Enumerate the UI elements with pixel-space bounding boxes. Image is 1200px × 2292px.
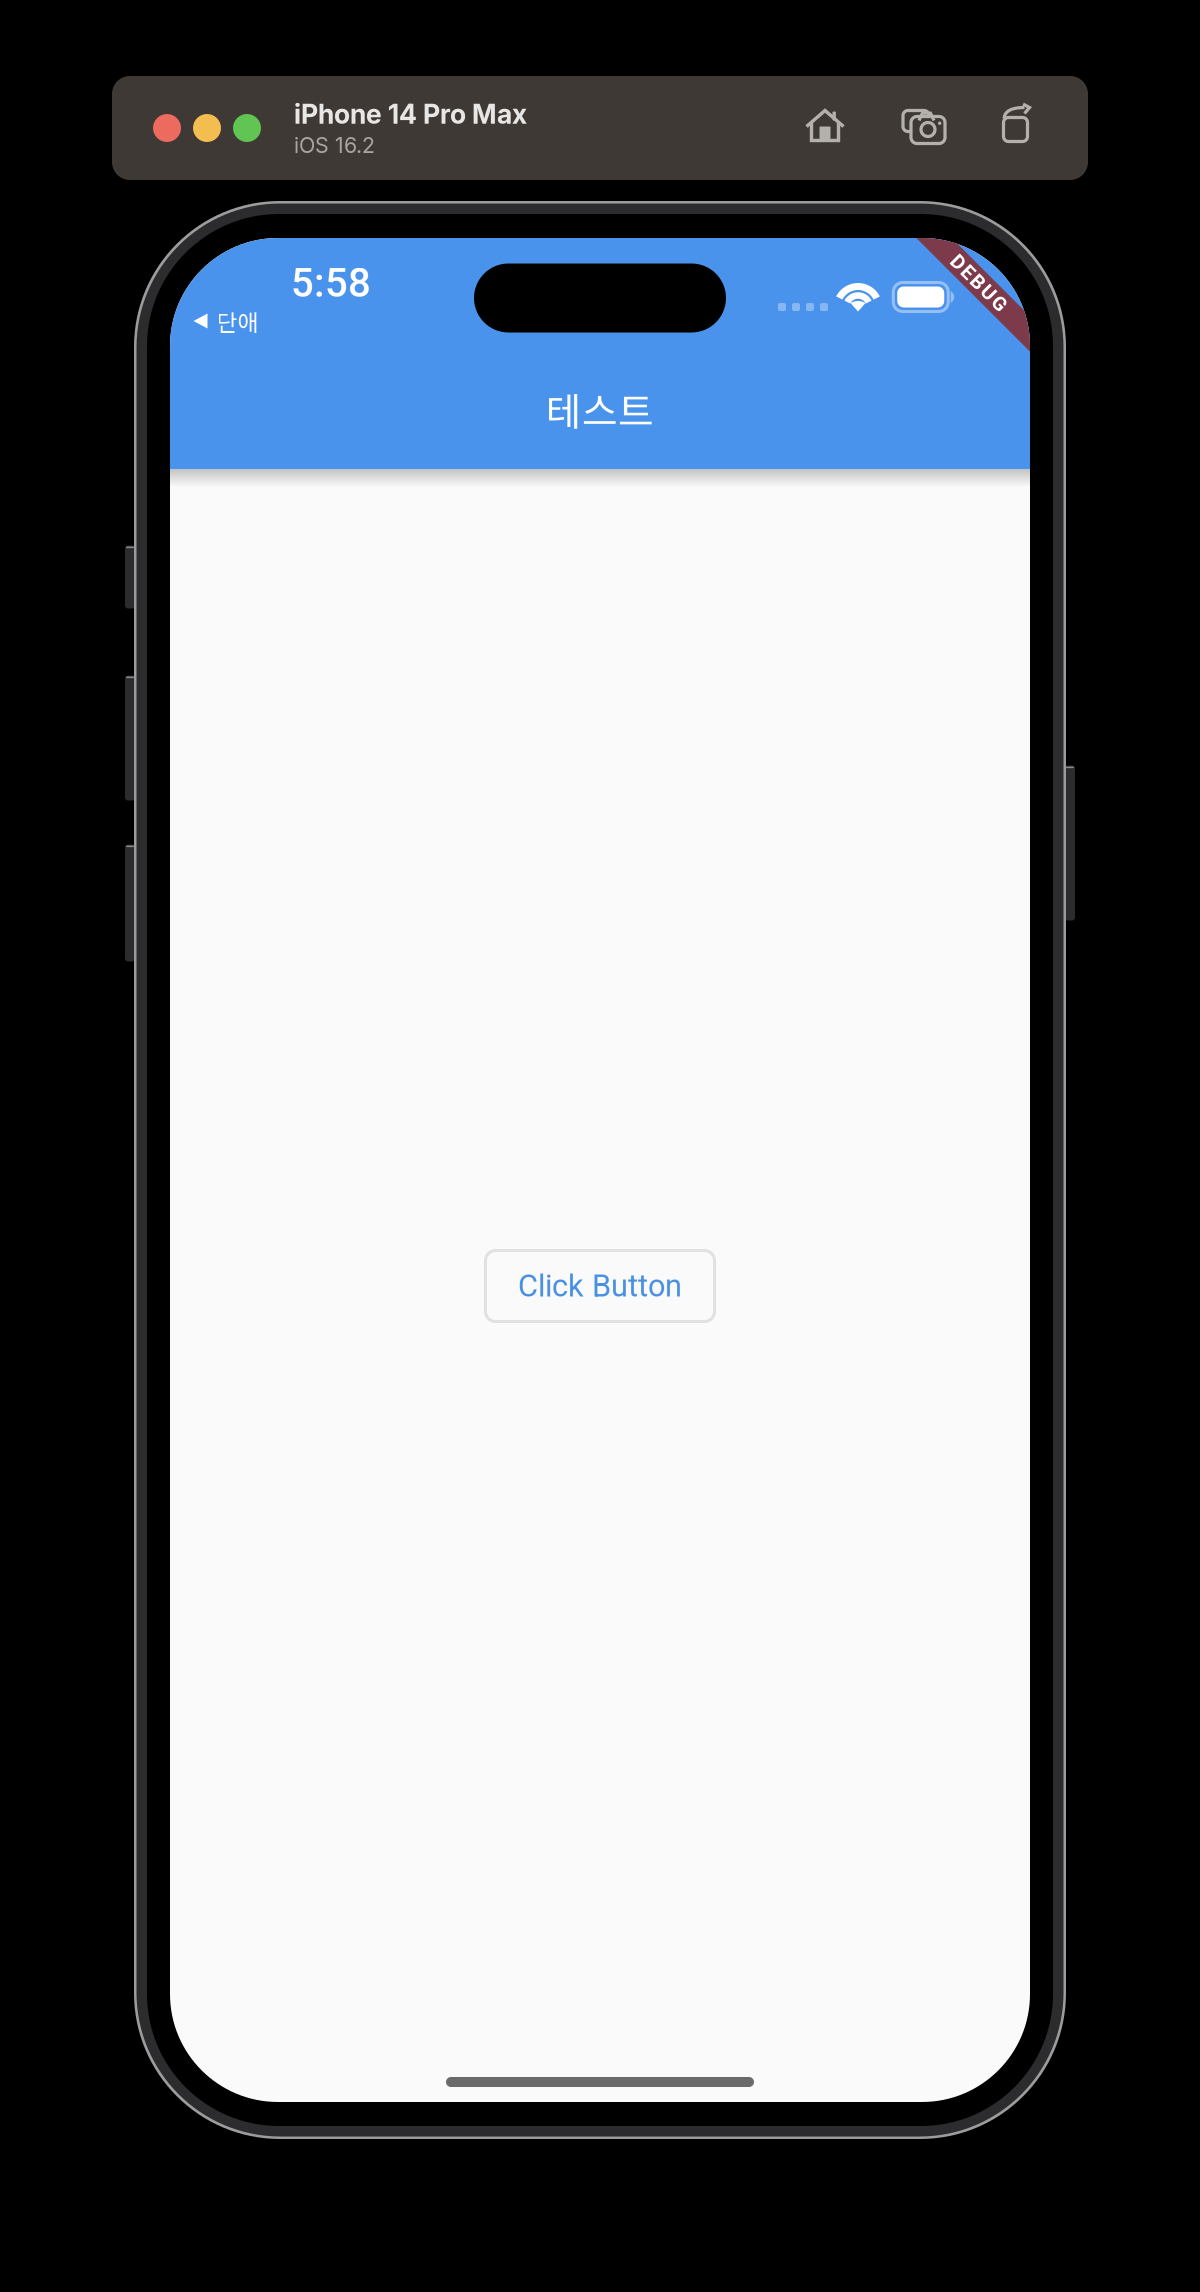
staticText: 테스트 bbox=[546, 381, 654, 437]
staticText: 5:58 bbox=[291, 260, 371, 306]
staticText: Click Button bbox=[518, 1268, 682, 1304]
button[interactable]: Rotate bbox=[996, 105, 1031, 142]
button[interactable]: Minimise bbox=[193, 114, 221, 142]
staticText: iOS 16.2 bbox=[294, 132, 375, 158]
button[interactable]: Home bbox=[805, 107, 844, 142]
staticText: iPhone 14 Pro Max bbox=[294, 98, 527, 130]
button[interactable]: Zoom bbox=[233, 114, 261, 142]
staticText: DEBUG bbox=[943, 271, 1015, 295]
staticText: 단애 bbox=[216, 305, 258, 337]
button[interactable]: Screenshot bbox=[903, 108, 945, 143]
button[interactable]: Click Button bbox=[485, 1250, 714, 1321]
button[interactable]: Back to 단애 bbox=[185, 299, 266, 343]
button[interactable]: Close bbox=[153, 114, 181, 142]
